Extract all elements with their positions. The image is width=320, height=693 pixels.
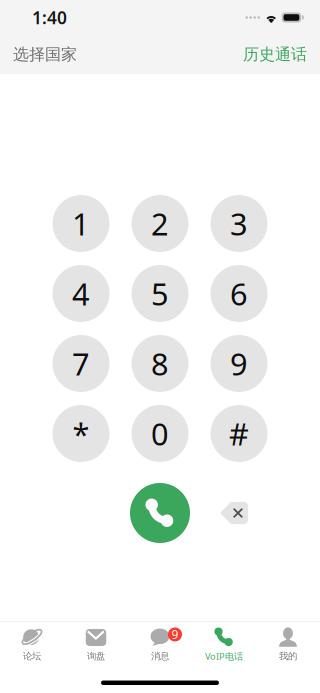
button[interactable]: 7 (52, 335, 109, 392)
button[interactable]: 我的 (256, 622, 320, 668)
button[interactable]: 8 (131, 335, 188, 392)
staticText: 我的 (279, 650, 297, 662)
staticText: 选择国家 (13, 45, 77, 64)
staticText: 询盘 (87, 650, 105, 662)
button[interactable]: 4 (52, 265, 109, 322)
button[interactable]: 9 (210, 335, 267, 392)
staticText: 消息 (151, 650, 169, 662)
staticText: * (72, 413, 89, 454)
button[interactable]: 0 (131, 405, 188, 462)
staticText: 论坛 (23, 650, 41, 662)
button[interactable]: 9 (128, 622, 192, 668)
button[interactable]: 询盘 (64, 622, 128, 668)
staticText: 5 (151, 273, 169, 314)
staticText: 1 (72, 203, 90, 244)
button[interactable]: 6 (210, 265, 267, 322)
button[interactable]: * (52, 405, 109, 462)
staticText: 8 (151, 343, 169, 384)
button[interactable]: Delete (212, 491, 256, 535)
staticText: # (229, 413, 249, 454)
staticText: 0 (151, 413, 169, 454)
button[interactable]: VoIP电话 (192, 622, 256, 668)
staticText: 9 (230, 343, 248, 384)
staticText: 7 (72, 343, 90, 384)
button[interactable]: 历史通话 (230, 35, 320, 74)
staticText: 1:40 (32, 6, 67, 29)
button[interactable]: 2 (131, 195, 188, 252)
staticText: 2 (151, 203, 169, 244)
button[interactable]: # (210, 405, 267, 462)
staticText: VoIP电话 (205, 650, 243, 662)
staticText: 6 (230, 273, 248, 314)
button[interactable]: 论坛 (0, 622, 64, 668)
button[interactable]: 1 (52, 195, 109, 252)
button[interactable]: 3 (210, 195, 267, 252)
button[interactable]: 5 (131, 265, 188, 322)
button[interactable]: Call (130, 483, 190, 543)
button[interactable]: 选择国家 (0, 35, 90, 74)
staticText: 4 (72, 273, 90, 314)
staticText: 3 (230, 203, 248, 244)
staticText: 9 (171, 626, 178, 642)
staticText: 历史通话 (243, 45, 307, 64)
